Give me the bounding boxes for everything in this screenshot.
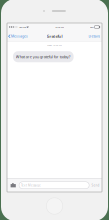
button[interactable]: Messages [9, 31, 30, 41]
staticText: Messages [11, 34, 28, 39]
staticText: What are you grateful for today? [16, 54, 71, 59]
staticText: Verizon [18, 25, 26, 29]
staticText: 10:03 PM [55, 25, 64, 29]
button[interactable]: Take photo [10, 182, 17, 188]
button[interactable]: Details [86, 31, 100, 41]
staticText: Details [88, 34, 100, 39]
staticText: Today 10:00 PM [47, 44, 62, 47]
staticText: Text Message [21, 183, 41, 187]
button[interactable]: Send [91, 181, 99, 189]
staticText: Send [91, 183, 99, 187]
staticText: Grateful [46, 33, 62, 39]
staticText: 85% [90, 25, 94, 29]
